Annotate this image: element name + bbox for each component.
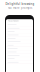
button[interactable] (6, 47, 33, 50)
button[interactable] (6, 23, 33, 27)
staticText: Delightful browsing (5, 2, 34, 6)
button[interactable] (6, 54, 33, 57)
button[interactable] (6, 61, 33, 64)
button[interactable] (6, 57, 33, 61)
button[interactable] (6, 40, 33, 44)
button[interactable] (6, 37, 33, 40)
button[interactable] (6, 27, 33, 30)
staticText: No more prompts (8, 6, 32, 10)
button[interactable] (6, 44, 33, 47)
button[interactable] (6, 30, 33, 33)
staticText: Privacy Report (8, 20, 19, 22)
